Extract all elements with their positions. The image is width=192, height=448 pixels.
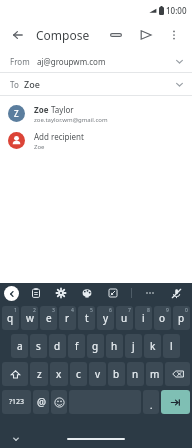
staticText: Taylor xyxy=(51,104,74,115)
button[interactable]: s xyxy=(30,334,47,358)
staticText: u xyxy=(121,311,128,325)
staticText: 4 xyxy=(71,307,74,314)
staticText: . xyxy=(150,399,153,411)
staticText: aj@groupwm.com xyxy=(37,56,106,67)
staticText: 6 xyxy=(109,307,112,314)
button[interactable]: Shift xyxy=(2,362,28,386)
staticText: e xyxy=(46,311,52,325)
button[interactable]: v xyxy=(89,362,106,386)
button[interactable]: Emoji xyxy=(51,390,67,414)
staticText: q xyxy=(7,311,14,325)
staticText: v xyxy=(95,367,101,381)
staticText: 9 xyxy=(166,307,169,314)
button[interactable]: Clipboard xyxy=(28,285,44,301)
button[interactable]: Back xyxy=(8,25,28,45)
button[interactable]: Settings xyxy=(53,285,69,301)
button[interactable]: At sign xyxy=(33,390,49,414)
button[interactable]: d xyxy=(49,334,66,358)
staticText: i xyxy=(142,311,145,325)
button[interactable]: Mute voice xyxy=(168,285,184,301)
staticText: m xyxy=(150,367,160,381)
button[interactable]: t xyxy=(78,306,95,330)
staticText: ?123 xyxy=(9,397,25,407)
staticText: y xyxy=(103,311,109,325)
button[interactable]: Z xyxy=(0,100,192,127)
button[interactable]: From xyxy=(0,50,192,72)
button[interactable]: g xyxy=(87,334,104,358)
button[interactable]: o xyxy=(154,306,171,330)
button[interactable]: Resize xyxy=(105,285,121,301)
button[interactable]: Hide keyboard xyxy=(10,433,22,445)
staticText: c xyxy=(76,367,81,381)
button[interactable]: More options xyxy=(164,25,184,45)
staticText: t xyxy=(85,311,89,325)
staticText: Z xyxy=(14,108,19,119)
button[interactable]: r xyxy=(59,306,76,330)
staticText: a xyxy=(17,339,23,353)
button[interactable]: Back xyxy=(4,286,19,301)
staticText: s xyxy=(36,339,41,353)
staticText: o xyxy=(159,311,166,325)
staticText: k xyxy=(150,339,156,353)
staticText: 3 xyxy=(52,307,55,314)
staticText: n xyxy=(132,367,139,381)
button[interactable]: Backspace xyxy=(165,362,190,386)
button[interactable]: c xyxy=(70,362,87,386)
button[interactable]: Add recipient xyxy=(0,127,192,154)
button[interactable]: e xyxy=(40,306,57,330)
staticText: 1 xyxy=(14,307,17,314)
staticText: l xyxy=(170,339,173,353)
staticText: g xyxy=(92,339,99,353)
staticText: 0 xyxy=(185,307,188,314)
button[interactable]: z xyxy=(30,362,48,386)
button[interactable]: b xyxy=(108,362,125,386)
staticText: To xyxy=(10,79,19,90)
button[interactable]: More xyxy=(142,285,158,301)
button[interactable]: n xyxy=(127,362,144,386)
button[interactable]: Attach xyxy=(106,25,126,45)
staticText: 5 xyxy=(90,307,93,314)
staticText: 7 xyxy=(128,307,131,314)
staticText: From xyxy=(10,56,30,67)
button[interactable]: To xyxy=(0,73,192,95)
button[interactable]: k xyxy=(144,334,161,358)
staticText: Zoe xyxy=(24,78,40,90)
staticText: r xyxy=(65,311,70,325)
staticText: Zoe xyxy=(34,143,45,151)
button[interactable]: q xyxy=(2,306,19,330)
staticText: zoe.taylor.wm@gmail.com xyxy=(34,116,108,124)
button[interactable]: i xyxy=(135,306,152,330)
button[interactable]: w xyxy=(21,306,38,330)
staticText: h xyxy=(111,339,118,353)
button[interactable]: ?123 xyxy=(2,390,31,414)
button[interactable]: j xyxy=(125,334,142,358)
staticText: 2 xyxy=(33,307,36,314)
button[interactable]: f xyxy=(68,334,85,358)
button[interactable]: h xyxy=(106,334,123,358)
button[interactable]: x xyxy=(50,362,68,386)
staticText: w xyxy=(26,311,34,325)
button[interactable]: Enter xyxy=(161,390,190,414)
button[interactable]: Theme xyxy=(79,285,95,301)
button[interactable]: p xyxy=(173,306,190,330)
staticText: x xyxy=(56,367,62,381)
staticText: f xyxy=(75,339,79,353)
button[interactable]: a xyxy=(11,334,28,358)
staticText: b xyxy=(113,367,120,381)
staticText: @ xyxy=(37,395,46,409)
button[interactable]: u xyxy=(116,306,133,330)
button[interactable]: m xyxy=(146,362,163,386)
button[interactable]: Period xyxy=(143,390,159,414)
staticText: j xyxy=(132,339,135,353)
button[interactable]: Send xyxy=(136,25,156,45)
staticText: p xyxy=(178,311,185,325)
staticText: 10:00 xyxy=(166,5,187,16)
staticText: Add recipient xyxy=(34,131,84,142)
staticText: 8 xyxy=(147,307,150,314)
staticText: z xyxy=(37,367,42,381)
button[interactable]: l xyxy=(163,334,180,358)
staticText: d xyxy=(54,339,61,353)
staticText: Zoe xyxy=(34,104,51,115)
button[interactable]: y xyxy=(97,306,114,330)
